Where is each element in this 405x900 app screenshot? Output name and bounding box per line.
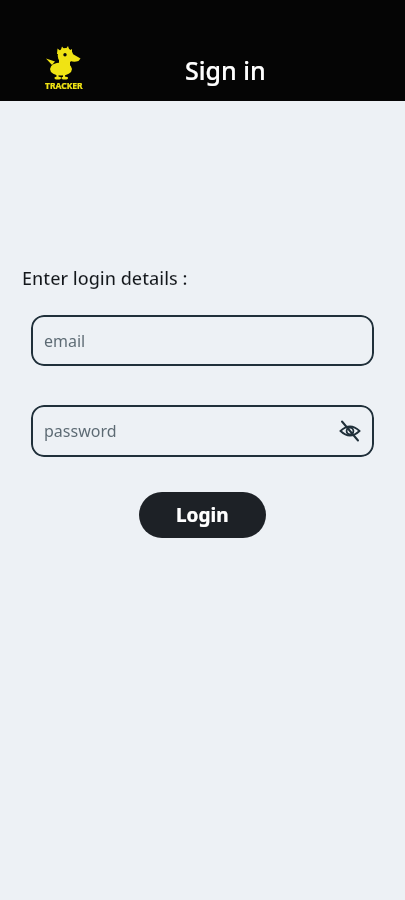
staticText: TRACKER — [45, 80, 83, 92]
staticText: Enter login details : — [22, 266, 188, 291]
button[interactable]: email — [31, 315, 374, 366]
staticText: password — [44, 420, 117, 442]
staticText: Sign in — [185, 53, 266, 87]
button[interactable]: password — [31, 405, 374, 457]
staticText: Login — [176, 502, 229, 528]
staticText: email — [44, 330, 86, 352]
button[interactable]: Login — [139, 492, 266, 538]
